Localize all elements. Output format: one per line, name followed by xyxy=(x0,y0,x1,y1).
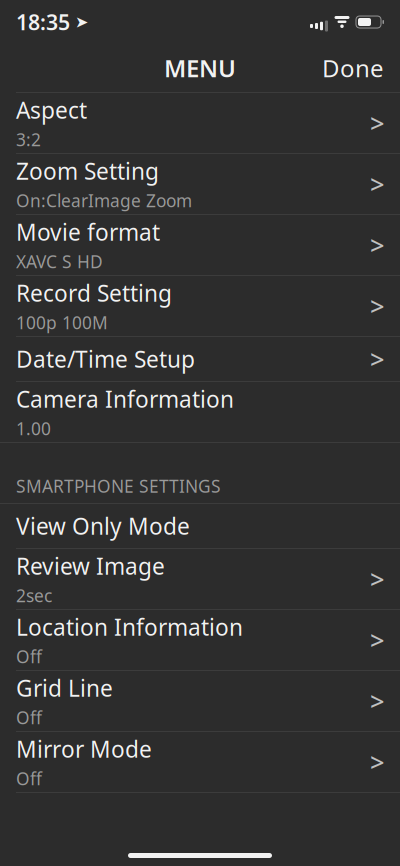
staticText: Off xyxy=(16,645,42,668)
staticText: Movie format xyxy=(16,217,160,247)
staticText: XAVC S HD xyxy=(16,250,103,273)
button[interactable]: View Only Mode xyxy=(0,504,400,549)
staticText: 2sec xyxy=(16,584,52,607)
staticText: > xyxy=(370,228,384,262)
button[interactable]: Zoom Setting xyxy=(0,154,400,215)
button[interactable]: Aspect xyxy=(0,93,400,154)
button[interactable]: Review Image xyxy=(0,549,400,610)
staticText: > xyxy=(370,106,384,140)
staticText: Zoom Setting xyxy=(16,156,159,186)
staticText: > xyxy=(370,623,384,657)
button[interactable]: Record Setting xyxy=(0,276,400,337)
staticText: On:ClearImage Zoom xyxy=(16,189,192,212)
staticText: Aspect xyxy=(16,95,87,125)
staticText: > xyxy=(370,167,384,201)
staticText: 3:2 xyxy=(16,128,41,151)
button[interactable]: Grid Line xyxy=(0,671,400,732)
button[interactable]: Mirror Mode xyxy=(0,732,400,793)
button[interactable]: Location Information xyxy=(0,610,400,671)
button[interactable]: Movie format xyxy=(0,215,400,276)
staticText: Grid Line xyxy=(16,673,113,703)
staticText: Date/Time Setup xyxy=(16,344,195,374)
staticText: 100p 100M xyxy=(16,311,108,334)
staticText: Off xyxy=(16,706,42,729)
staticText: Record Setting xyxy=(16,278,172,308)
staticText: Camera Information xyxy=(16,384,234,414)
button[interactable]: Date/Time Setup xyxy=(0,337,400,382)
button[interactable]: Done xyxy=(306,41,400,95)
staticText: Off xyxy=(16,767,42,790)
staticText: Review Image xyxy=(16,551,165,581)
staticText: 1.00 xyxy=(16,417,51,440)
staticText: ➤ xyxy=(75,13,88,31)
staticText: Mirror Mode xyxy=(16,734,152,764)
staticText: SMARTPHONE SETTINGS xyxy=(16,474,221,497)
staticText: View Only Mode xyxy=(16,511,190,541)
staticText: > xyxy=(370,562,384,596)
staticText: MENU xyxy=(164,52,236,84)
staticText: 18:35 xyxy=(16,8,70,36)
staticText: > xyxy=(370,745,384,779)
staticText: Location Information xyxy=(16,612,243,642)
staticText: > xyxy=(370,684,384,718)
staticText: > xyxy=(370,342,384,376)
button[interactable]: Camera Information xyxy=(0,382,400,443)
staticText: > xyxy=(370,289,384,323)
staticText: Done xyxy=(322,52,384,84)
